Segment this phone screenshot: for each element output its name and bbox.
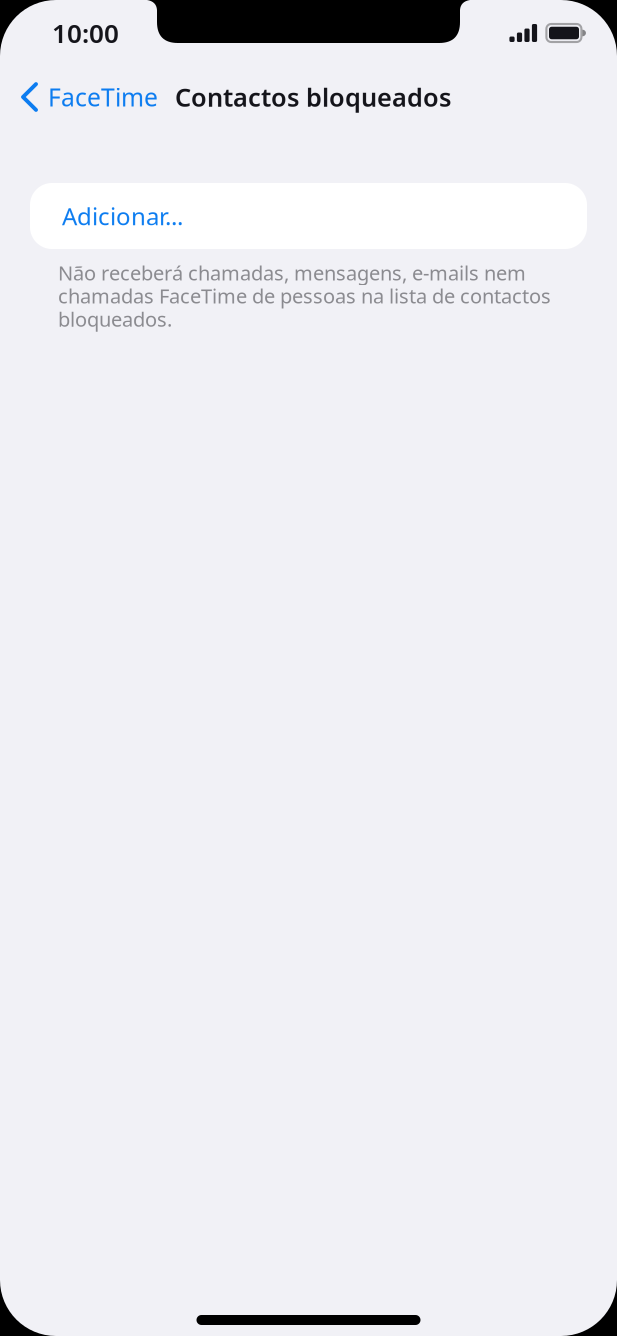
staticText: Adicionar... <box>62 200 183 232</box>
staticText: Contactos bloqueados <box>175 80 451 114</box>
button[interactable]: Adicionar... <box>30 183 587 249</box>
button[interactable]: FaceTime <box>0 69 168 125</box>
staticText: Não receberá chamadas, mensagens, e-mail… <box>58 259 551 333</box>
staticText: 10:00 <box>52 15 119 51</box>
staticText: FaceTime <box>48 80 158 114</box>
